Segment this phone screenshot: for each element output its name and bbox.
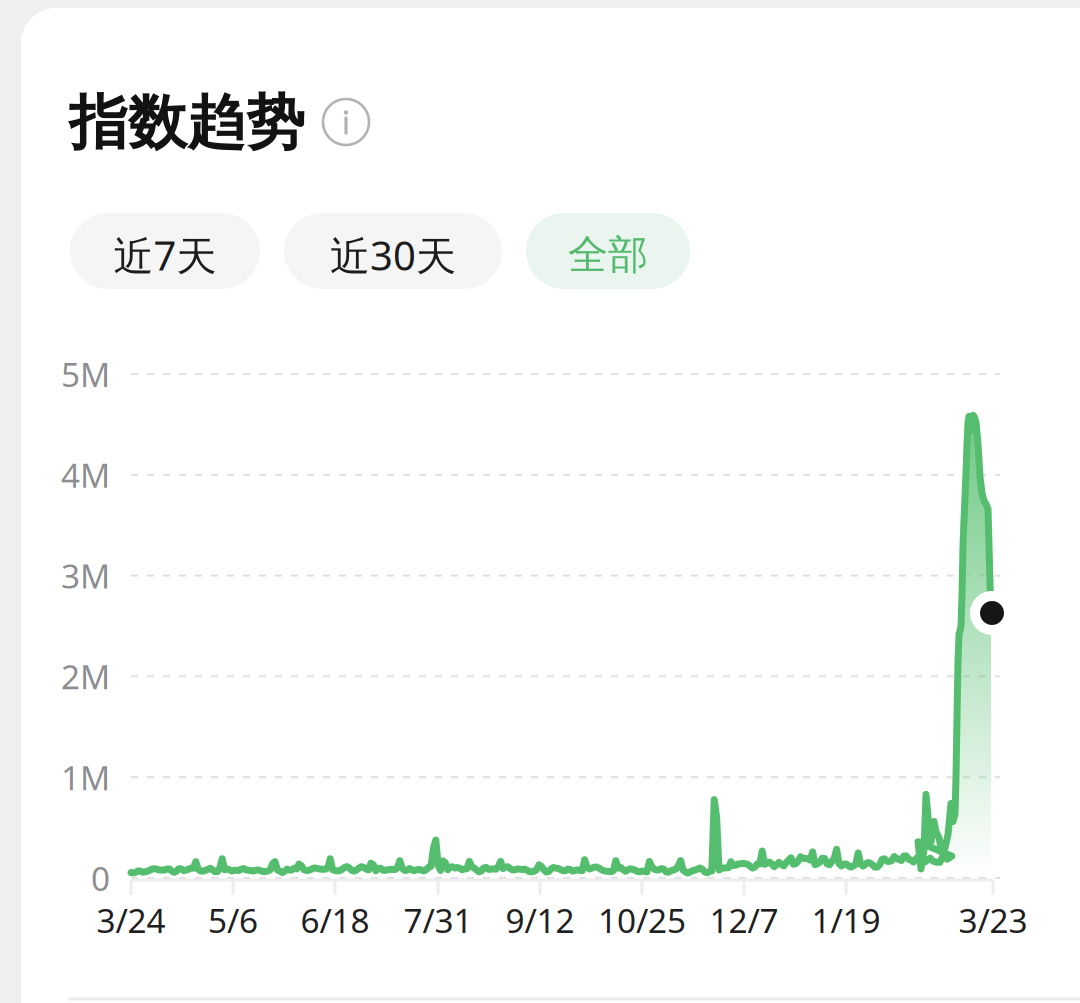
staticText: 1M	[61, 755, 110, 799]
staticText: 全部	[568, 230, 648, 279]
staticText: 9/12	[505, 898, 574, 942]
staticText: 12/7	[709, 898, 778, 942]
staticText: 5/6	[208, 898, 258, 942]
button[interactable]: 近30天	[284, 213, 502, 289]
staticText: 5M	[61, 352, 110, 396]
staticText: 6/18	[300, 898, 369, 942]
staticText: 近7天	[113, 228, 216, 281]
staticText: 2M	[61, 654, 110, 699]
staticText: 10/25	[598, 898, 686, 942]
button[interactable]: 全部	[526, 213, 690, 289]
staticText: 7/31	[403, 898, 472, 942]
staticText: 1/19	[811, 898, 880, 942]
button[interactable]: Info	[323, 99, 369, 145]
staticText: 0	[91, 856, 110, 900]
staticText: 3/23	[958, 898, 1027, 942]
staticText: 近30天	[330, 228, 456, 281]
staticText: 3M	[61, 553, 110, 598]
staticText: 4M	[61, 453, 110, 497]
staticText: 3/24	[96, 898, 165, 942]
staticText: 指数趋势	[69, 87, 305, 159]
button[interactable]: 近7天	[70, 213, 260, 289]
